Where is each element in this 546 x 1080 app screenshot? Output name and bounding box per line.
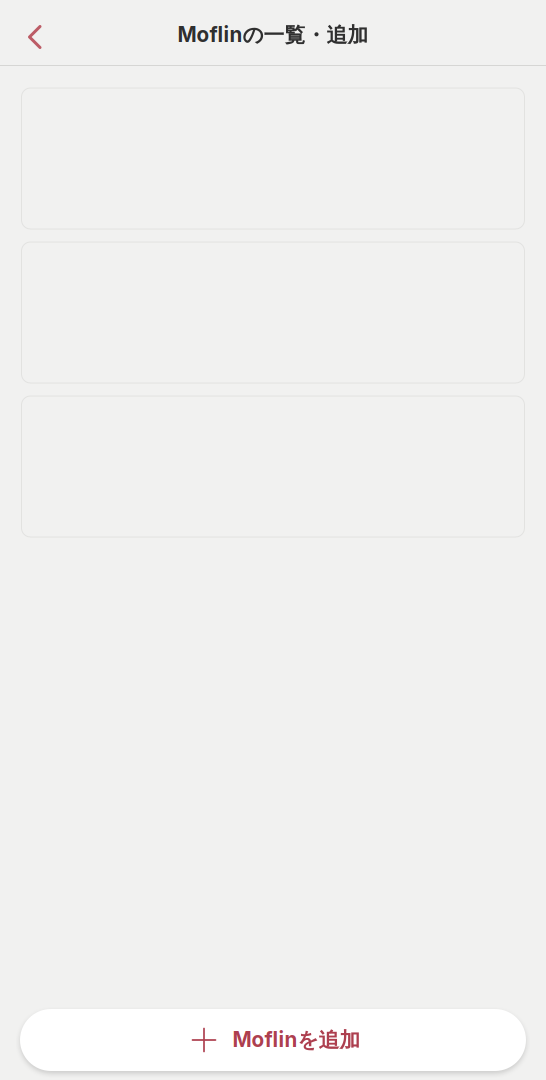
staticText: Moflinの一覧・追加 xyxy=(177,22,368,48)
button[interactable]: Moflinを追加 xyxy=(20,1009,526,1071)
staticText: Moflinを追加 xyxy=(232,1027,360,1053)
button[interactable]: Back xyxy=(7,0,63,64)
